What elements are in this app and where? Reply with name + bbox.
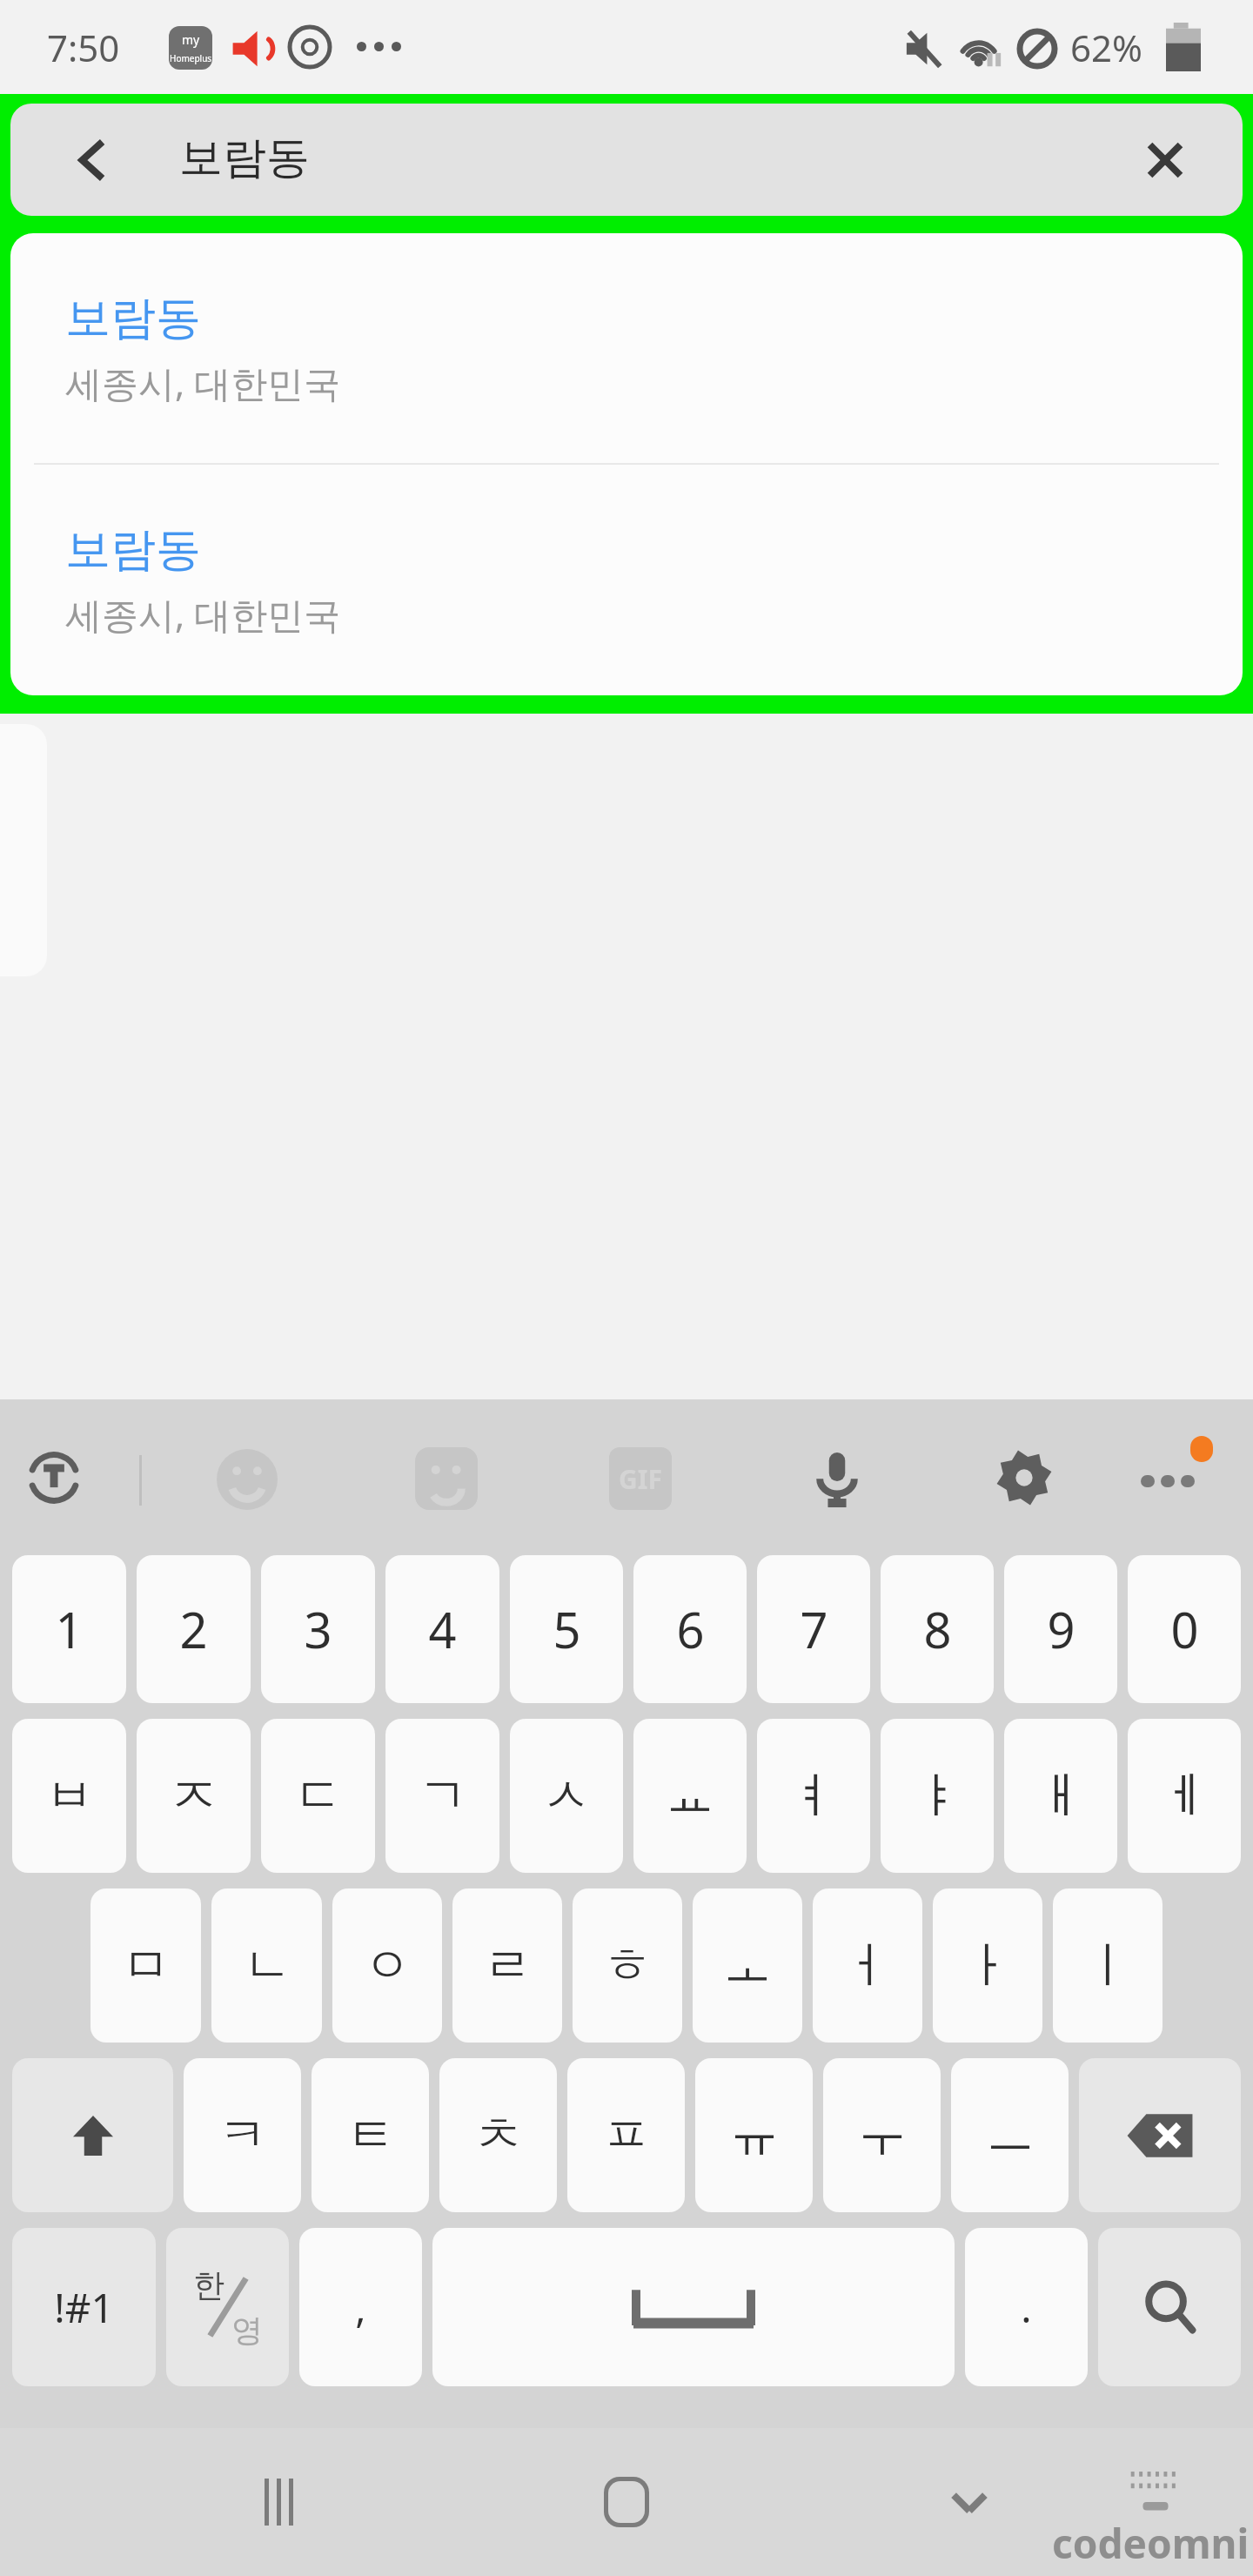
- button[interactable]: ㅅ: [510, 1719, 623, 1873]
- staticText: 6: [676, 1596, 705, 1662]
- button[interactable]: ㅌ: [312, 2058, 429, 2212]
- button[interactable]: ㅐ: [1004, 1719, 1117, 1873]
- button[interactable]: ㅇ: [332, 1888, 442, 2043]
- staticText: ㄹ: [483, 1935, 532, 1996]
- button[interactable]: ㄷ: [261, 1719, 375, 1873]
- button[interactable]: ㄴ: [211, 1888, 322, 2043]
- staticText: ㅕ: [789, 1765, 838, 1827]
- staticText: 보람동: [179, 131, 310, 185]
- button[interactable]: 2: [137, 1555, 251, 1703]
- staticText: 세종시, 대한민국: [65, 589, 341, 639]
- button[interactable]: ㅕ: [757, 1719, 870, 1873]
- staticText: 62%: [1070, 23, 1142, 72]
- button[interactable]: Backspace: [1079, 2058, 1241, 2212]
- button[interactable]: ㅊ: [439, 2058, 557, 2212]
- staticText: my: [182, 31, 200, 48]
- button[interactable]: ㅍ: [567, 2058, 685, 2212]
- staticText: ㅔ: [1160, 1765, 1209, 1827]
- button[interactable]: ㅠ: [695, 2058, 813, 2212]
- button[interactable]: 0: [1128, 1555, 1241, 1703]
- staticText: ㅗ: [723, 1935, 772, 1996]
- button[interactable]: Hide keyboard: [917, 2450, 1022, 2554]
- button[interactable]: ㅗ: [693, 1888, 802, 2043]
- staticText: ㅋ: [218, 2104, 267, 2166]
- staticText: ㄱ: [419, 1765, 467, 1827]
- button[interactable]: ㄱ: [385, 1719, 499, 1873]
- staticText: 7:50: [47, 23, 120, 72]
- staticText: 세종시, 대한민국: [65, 358, 341, 407]
- button[interactable]: Back: [56, 124, 129, 197]
- button[interactable]: 8: [881, 1555, 994, 1703]
- staticText: ㅍ: [602, 2104, 651, 2166]
- button[interactable]: ㅑ: [881, 1719, 994, 1873]
- button[interactable]: Clear: [1128, 123, 1203, 198]
- staticText: 2: [179, 1596, 208, 1662]
- staticText: Homeplus: [170, 52, 212, 64]
- button[interactable]: Search: [1098, 2228, 1241, 2386]
- button[interactable]: 보람동: [10, 233, 1243, 463]
- staticText: 9: [1047, 1596, 1075, 1662]
- staticText: ㅇ: [363, 1935, 412, 1996]
- button[interactable]: Change language: [166, 2228, 289, 2386]
- button[interactable]: ㅣ: [1053, 1888, 1163, 2043]
- button[interactable]: ㅁ: [90, 1888, 201, 2043]
- button[interactable]: ㅔ: [1128, 1719, 1241, 1873]
- staticText: ㄷ: [294, 1765, 343, 1827]
- staticText: ㅠ: [730, 2104, 779, 2166]
- button[interactable]: Shift: [12, 2058, 173, 2212]
- staticText: codeomni: [1052, 2516, 1250, 2571]
- button[interactable]: More options: [1131, 1441, 1215, 1514]
- button[interactable]: 6: [633, 1555, 747, 1703]
- button[interactable]: 5: [510, 1555, 623, 1703]
- button[interactable]: 7: [757, 1555, 870, 1703]
- button[interactable]: 1: [12, 1555, 126, 1703]
- staticText: ㅈ: [170, 1765, 218, 1827]
- button[interactable]: Keyboard layout: [1114, 2457, 1197, 2526]
- button[interactable]: 4: [385, 1555, 499, 1703]
- staticText: ㅐ: [1036, 1765, 1085, 1827]
- staticText: ㅓ: [843, 1935, 892, 1996]
- button[interactable]: Recents: [226, 2450, 331, 2554]
- staticText: ㅊ: [474, 2104, 523, 2166]
- staticText: 보람동: [65, 290, 201, 347]
- button[interactable]: ㅎ: [573, 1888, 682, 2043]
- staticText: 한: [193, 2265, 224, 2304]
- button[interactable]: Settings: [988, 1441, 1061, 1514]
- button[interactable]: ㅓ: [813, 1888, 922, 2043]
- button[interactable]: .: [965, 2228, 1088, 2386]
- button[interactable]: Space: [432, 2228, 955, 2386]
- button[interactable]: Text mode: [17, 1441, 90, 1514]
- button[interactable]: Home: [574, 2450, 679, 2554]
- button[interactable]: ㅋ: [184, 2058, 301, 2212]
- button[interactable]: Voice input: [801, 1441, 874, 1514]
- button[interactable]: ㅡ: [951, 2058, 1069, 2212]
- button[interactable]: ㅈ: [137, 1719, 251, 1873]
- staticText: !#1: [54, 2280, 114, 2335]
- staticText: ㅎ: [603, 1935, 652, 1996]
- button[interactable]: 9: [1004, 1555, 1117, 1703]
- button[interactable]: 보람동: [10, 465, 1243, 694]
- staticText: 1: [55, 1596, 84, 1662]
- staticText: 4: [428, 1596, 457, 1662]
- staticText: ㅂ: [45, 1765, 94, 1827]
- staticText: .: [1021, 2280, 1032, 2335]
- staticText: 0: [1170, 1596, 1199, 1662]
- staticText: ㅑ: [913, 1765, 962, 1827]
- button[interactable]: !#1: [12, 2228, 156, 2386]
- staticText: ㅌ: [346, 2104, 395, 2166]
- button[interactable]: ,: [299, 2228, 422, 2386]
- button[interactable]: ㅜ: [823, 2058, 941, 2212]
- staticText: 3: [304, 1596, 332, 1662]
- button[interactable]: ㅂ: [12, 1719, 126, 1873]
- staticText: 7: [800, 1596, 828, 1662]
- staticText: ㅏ: [963, 1935, 1012, 1996]
- button[interactable]: ㄹ: [452, 1888, 562, 2043]
- button[interactable]: 3: [261, 1555, 375, 1703]
- button[interactable]: ㅛ: [633, 1719, 747, 1873]
- staticText: ㅁ: [122, 1935, 171, 1996]
- button[interactable]: ㅏ: [933, 1888, 1042, 2043]
- staticText: ,: [355, 2280, 366, 2335]
- staticText: ㅡ: [986, 2104, 1035, 2166]
- staticText: 영: [231, 2311, 263, 2350]
- staticText: ㅛ: [666, 1765, 714, 1827]
